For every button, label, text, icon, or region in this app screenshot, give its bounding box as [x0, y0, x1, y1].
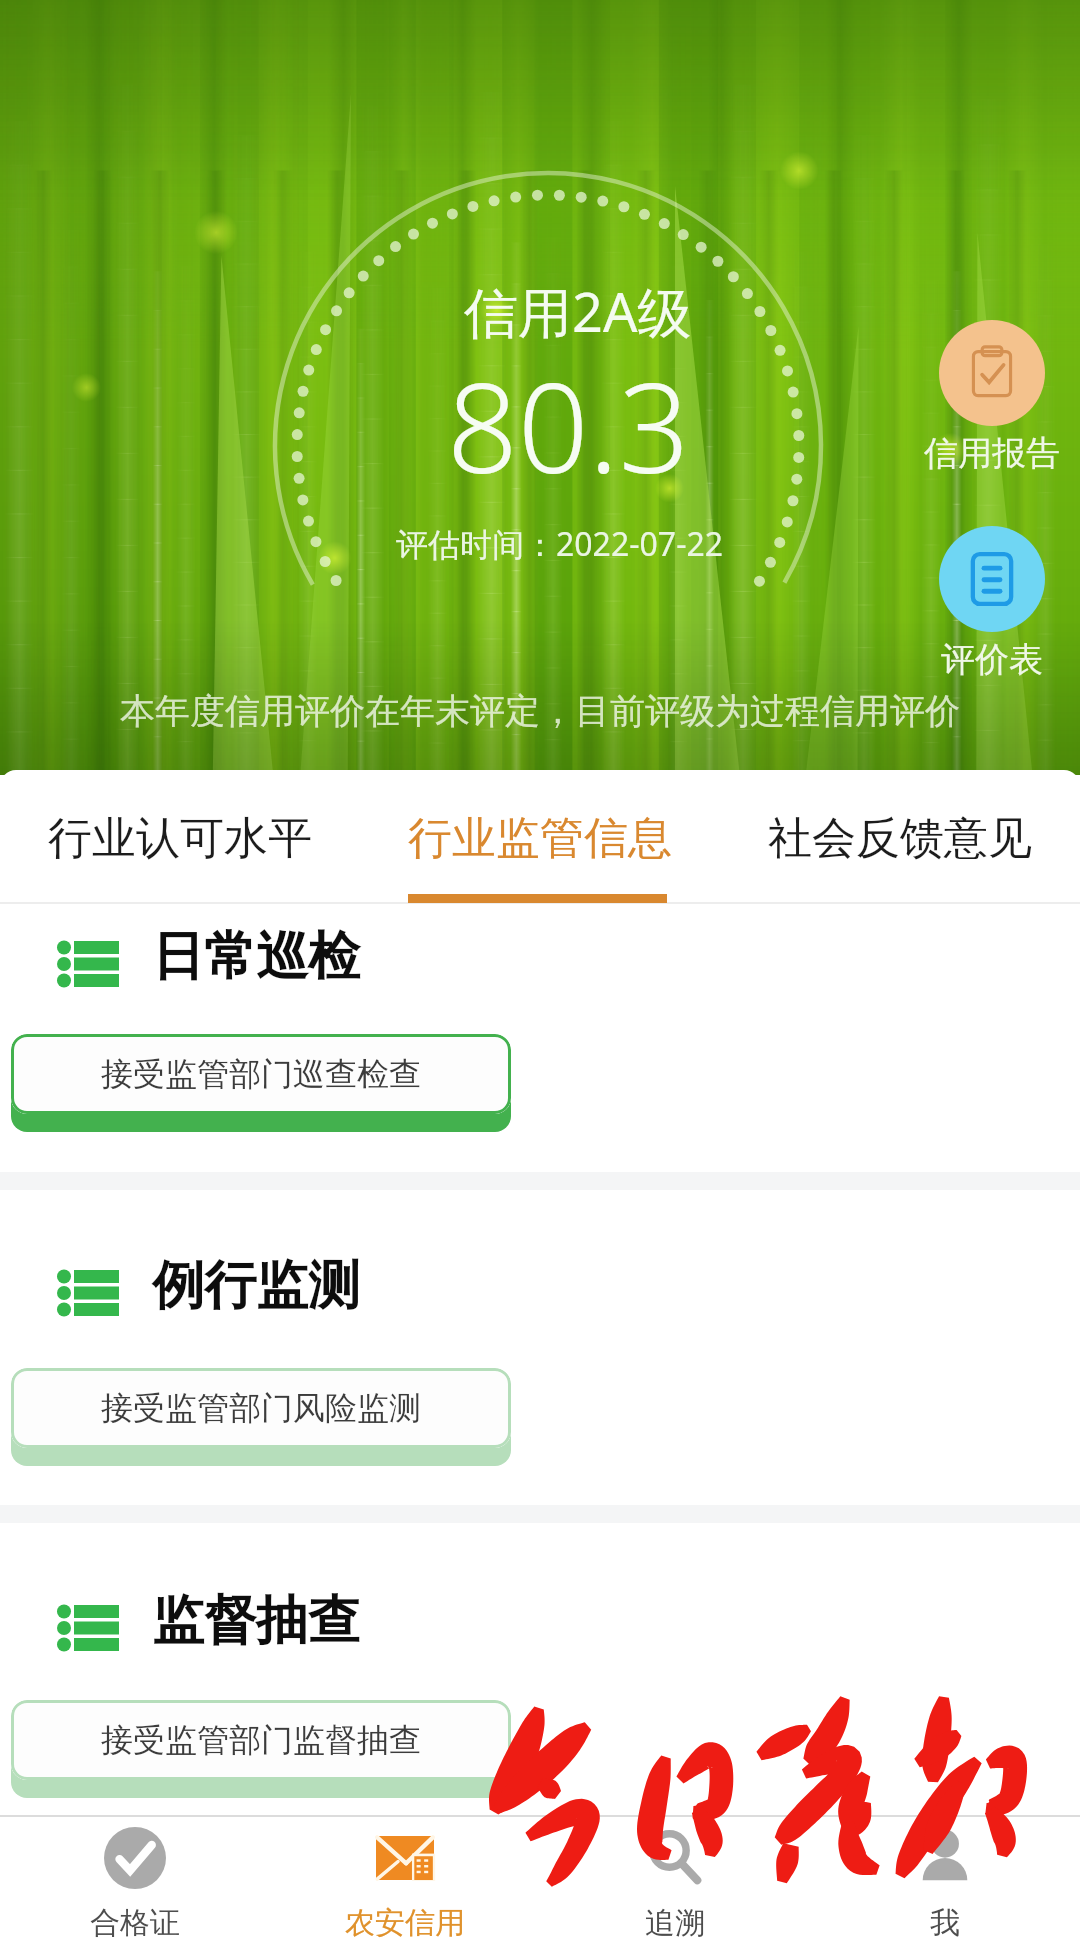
- staticText: 接受监管部门风险监测: [101, 1388, 421, 1428]
- staticText: 信用2A级: [464, 274, 692, 348]
- staticText: 评价表: [941, 638, 1043, 681]
- staticText: 评估时间：2022-07-22: [396, 522, 724, 566]
- button[interactable]: 信用报告: [924, 320, 1060, 475]
- button[interactable]: 社会反馈意见: [720, 770, 1080, 904]
- staticText: 社会反馈意见: [768, 811, 1032, 866]
- button[interactable]: 接受监管部门巡查检查: [11, 1034, 511, 1114]
- staticText: 追溯: [645, 1904, 705, 1942]
- staticText: 日常巡检: [152, 924, 360, 990]
- button[interactable]: 农安信用: [270, 1817, 540, 1948]
- staticText: 行业监管信息: [408, 811, 672, 866]
- button[interactable]: 接受监管部门风险监测: [11, 1368, 511, 1448]
- button[interactable]: 行业监管信息: [360, 770, 720, 904]
- button[interactable]: 行业认可水平: [0, 770, 360, 904]
- staticText: 例行监测: [152, 1253, 360, 1319]
- staticText: 我: [930, 1904, 960, 1942]
- staticText: 合格证: [90, 1904, 180, 1942]
- staticText: 农安信用: [345, 1904, 465, 1942]
- other: 信用报告: [939, 320, 1045, 426]
- staticText: 80.3: [447, 340, 690, 509]
- button[interactable]: 我: [810, 1817, 1080, 1948]
- staticText: 监督抽查: [152, 1588, 360, 1654]
- button[interactable]: 合格证: [0, 1817, 270, 1948]
- button[interactable]: 追溯: [540, 1817, 810, 1948]
- staticText: 接受监管部门监督抽查: [101, 1720, 421, 1760]
- button[interactable]: 接受监管部门监督抽查: [11, 1700, 511, 1780]
- staticText: 信用报告: [924, 432, 1060, 475]
- staticText: 行业认可水平: [48, 811, 312, 866]
- button[interactable]: 评价表: [939, 526, 1045, 681]
- staticText: 本年度信用评价在年末评定，目前评级为过程信用评价: [120, 689, 960, 733]
- staticText: 接受监管部门巡查检查: [101, 1054, 421, 1094]
- other: 评价表: [939, 526, 1045, 632]
